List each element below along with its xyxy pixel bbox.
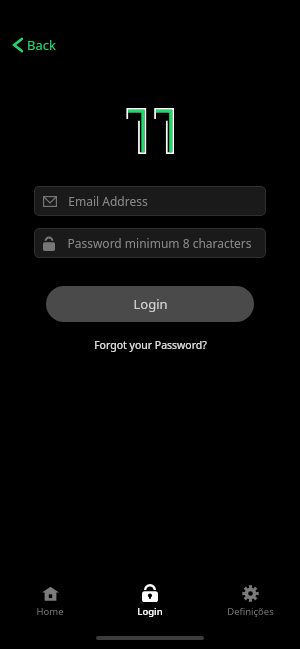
staticText: Password minimum 8 characters — [67, 235, 252, 251]
staticText: Definições — [227, 605, 274, 618]
staticText: Home — [36, 605, 64, 618]
staticText: Login — [133, 295, 168, 313]
button[interactable]: Home — [0, 581, 100, 622]
button[interactable]: Email Address — [34, 186, 266, 216]
button[interactable]: Login — [46, 286, 254, 322]
staticText: Back — [27, 36, 56, 54]
button[interactable]: Password minimum 8 characters — [34, 228, 266, 258]
button[interactable]: Login — [100, 580, 200, 622]
staticText: Email Address — [68, 193, 148, 209]
staticText: Forgot your Password? — [94, 338, 207, 352]
button[interactable]: Back — [8, 32, 60, 58]
button[interactable]: Definições — [200, 581, 300, 622]
button[interactable]: Forgot your Password? — [88, 335, 213, 355]
staticText: Login — [137, 605, 163, 618]
